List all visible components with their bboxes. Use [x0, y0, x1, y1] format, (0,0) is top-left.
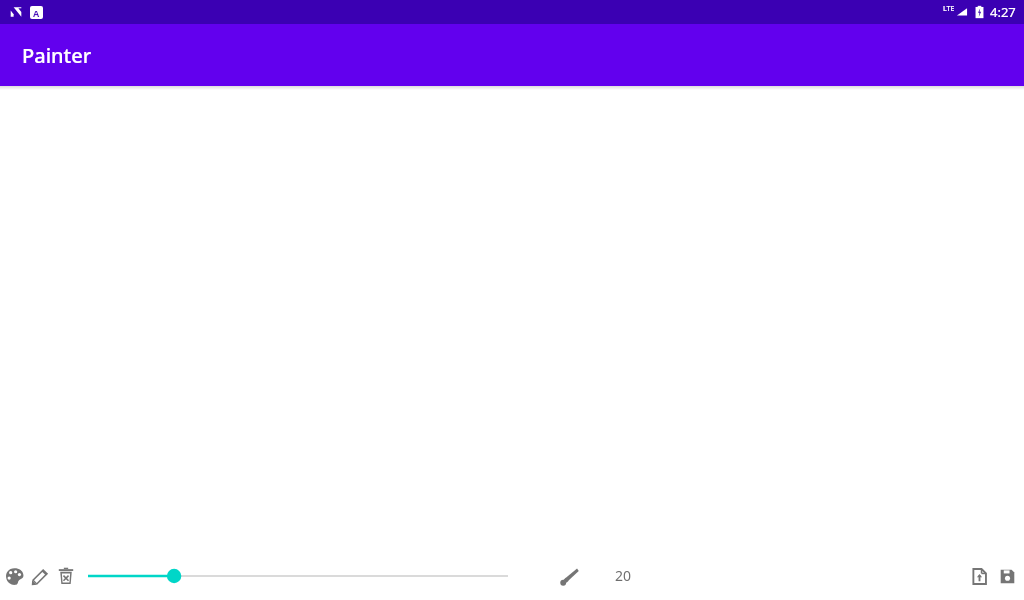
button[interactable]: Save image	[996, 565, 1018, 587]
staticText: A	[33, 7, 40, 19]
staticText: LTE	[943, 4, 955, 14]
button[interactable]: Brush size	[556, 563, 582, 589]
button[interactable]: Choose color	[2, 564, 26, 588]
staticText: 4:27	[990, 3, 1016, 21]
button[interactable]: Pencil	[28, 564, 52, 588]
button[interactable]: Open image	[968, 565, 990, 587]
button[interactable]	[80, 556, 516, 596]
button[interactable]: Clear canvas	[54, 564, 78, 588]
staticText: Painter	[22, 42, 92, 69]
staticText: 20	[610, 566, 636, 585]
